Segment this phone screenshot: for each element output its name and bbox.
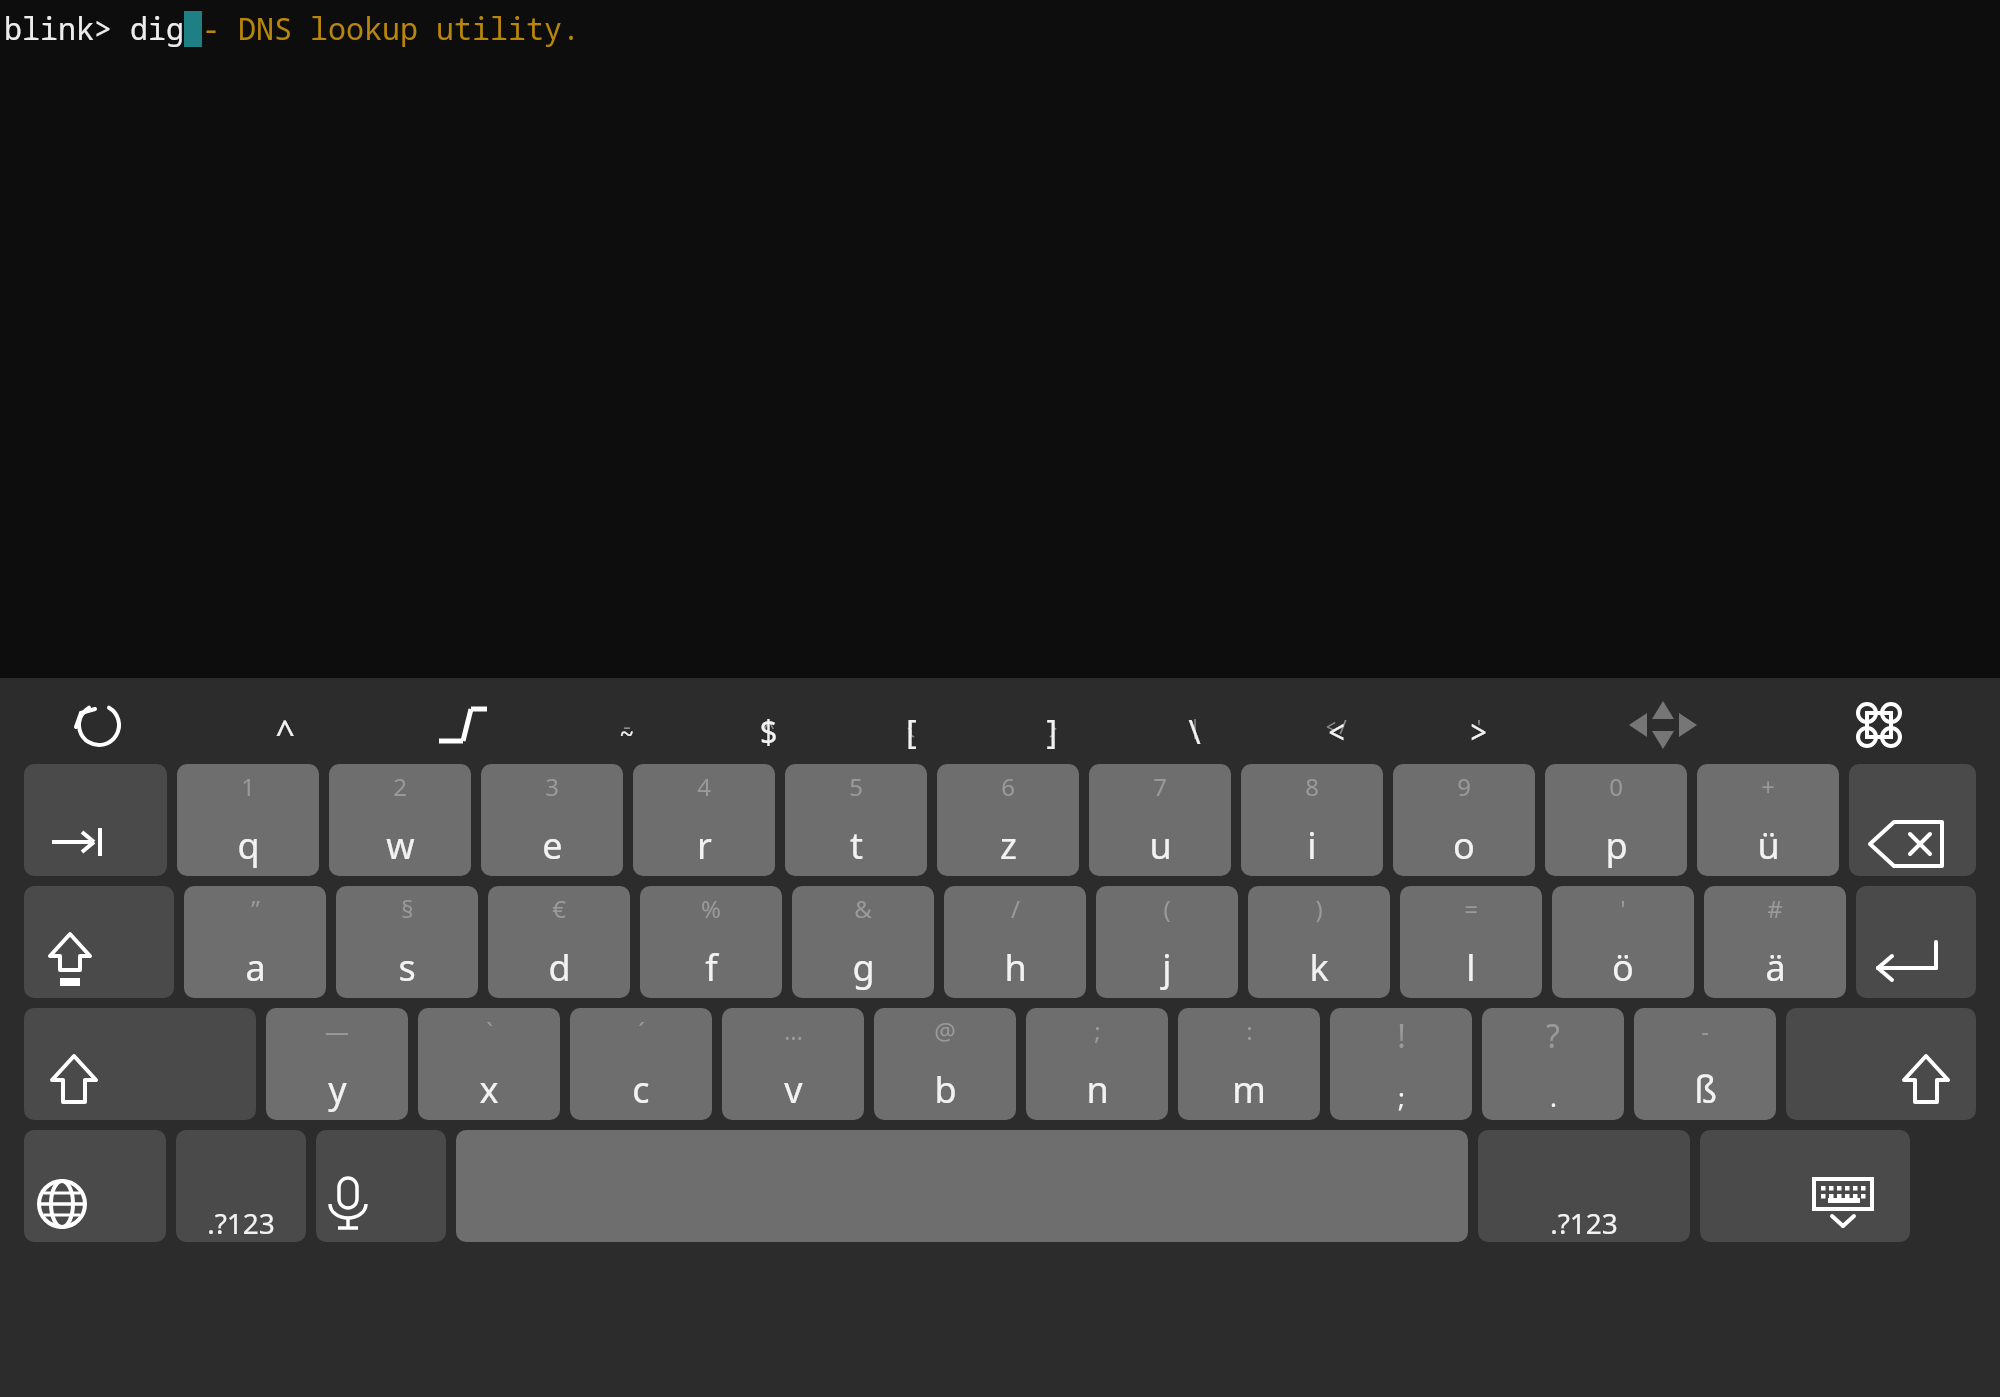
button[interactable]: ; (1026, 1008, 1168, 1120)
button[interactable]: Change keyboard (24, 1130, 166, 1242)
staticText: } (1047, 713, 1059, 740)
button[interactable]: ) (1248, 886, 1390, 998)
staticText: d (548, 943, 571, 992)
button[interactable]: .?123 (1478, 1130, 1690, 1242)
staticText: l (1466, 943, 1476, 992)
button[interactable]: { (876, 678, 946, 764)
staticText: ; (1094, 1014, 1101, 1047)
staticText: 1 (241, 770, 255, 803)
staticText: = (1464, 892, 1478, 925)
staticText: q (237, 821, 260, 870)
staticText: ´ (638, 1014, 645, 1047)
button[interactable]: … (722, 1008, 864, 1120)
button[interactable]: - (1634, 1008, 1776, 1120)
staticText: ` (486, 1014, 493, 1047)
staticText: ; (1398, 1079, 1405, 1114)
staticText: | (1189, 713, 1201, 740)
staticText: 5 (849, 770, 863, 803)
button[interactable]: : (1178, 1008, 1320, 1120)
button[interactable]: Shift (24, 1008, 256, 1120)
button[interactable]: 5 (785, 764, 927, 876)
button[interactable]: | (1160, 678, 1230, 764)
button[interactable]: + (1697, 764, 1839, 876)
button[interactable]: ( (1096, 886, 1238, 998)
staticText: n (1086, 1065, 1109, 1114)
button[interactable]: Backspace (1849, 764, 1976, 876)
button[interactable]: 7 (1089, 764, 1231, 876)
button[interactable]: — (266, 1008, 408, 1120)
staticText: - DNS lookup utility. (202, 8, 580, 49)
button[interactable]: 9 (1393, 764, 1535, 876)
button[interactable]: / (944, 886, 1086, 998)
staticText: 0 (1609, 770, 1623, 803)
button[interactable]: Dictate (316, 1130, 446, 1242)
button[interactable]: § (336, 886, 478, 998)
button[interactable]: Tab (426, 678, 496, 764)
staticText: § (401, 892, 414, 925)
button[interactable]: Hide keyboard (1700, 1130, 1910, 1242)
staticText: 9 (1457, 770, 1471, 803)
button[interactable]: Return (1856, 886, 1976, 998)
button[interactable]: ^ (250, 678, 320, 764)
button[interactable]: Caps lock (24, 886, 174, 998)
staticText: € (552, 892, 566, 925)
button[interactable]: 2 (329, 764, 471, 876)
button[interactable]: Arrow keys (1588, 678, 1738, 764)
button[interactable]: Command (1844, 678, 1914, 764)
staticText: o (1453, 821, 1475, 870)
button[interactable]: @ (874, 1008, 1016, 1120)
button[interactable]: % (640, 886, 782, 998)
button[interactable]: Shift (1786, 1008, 1976, 1120)
staticText: i (1307, 821, 1317, 870)
staticText: h (1004, 943, 1027, 992)
button[interactable]: 4 (633, 764, 775, 876)
button[interactable]: - (592, 678, 662, 764)
button[interactable]: 3 (481, 764, 623, 876)
button[interactable]: ' (1444, 678, 1514, 764)
button[interactable]: History (60, 678, 138, 764)
button[interactable]: 8 (1241, 764, 1383, 876)
staticText: > (1469, 710, 1489, 754)
button[interactable]: ? (1482, 1008, 1624, 1120)
staticText: y (328, 1065, 347, 1114)
staticText: \ (1185, 710, 1205, 754)
button[interactable]: } (1018, 678, 1088, 764)
staticText: .?123 (207, 1204, 275, 1242)
button[interactable]: # (1704, 886, 1846, 998)
button[interactable]: Tab (24, 764, 167, 876)
staticText: # (1767, 892, 1783, 925)
button[interactable]: 1 (177, 764, 319, 876)
button[interactable]: ' (1552, 886, 1694, 998)
staticText: . (1550, 1079, 1557, 1114)
staticText: k (1309, 943, 1329, 992)
button[interactable]: & (792, 886, 934, 998)
staticText: ' (1473, 713, 1485, 740)
staticText: r (697, 821, 712, 870)
staticText: .?123 (1550, 1204, 1618, 1242)
staticText: a (245, 943, 266, 992)
staticText: ! (1397, 1014, 1406, 1058)
staticText: ~ (619, 715, 635, 750)
button[interactable]: 0 (1545, 764, 1687, 876)
button[interactable]: ” (184, 886, 326, 998)
staticText: [ (901, 710, 921, 754)
staticText: b (934, 1065, 957, 1114)
button[interactable]: = (1400, 886, 1542, 998)
button[interactable]: ! (1330, 1008, 1472, 1120)
button[interactable]: ´ (570, 1008, 712, 1120)
button[interactable]: ` (418, 1008, 560, 1120)
button[interactable]: </ (1302, 678, 1372, 764)
staticText: u (1149, 821, 1172, 870)
staticText: ü (1757, 821, 1780, 870)
button[interactable]: ^ (734, 678, 804, 764)
staticText: < (1327, 710, 1347, 754)
staticText: ) (1315, 892, 1323, 925)
staticText: g (852, 943, 875, 992)
staticText: ” (251, 892, 260, 925)
staticText: j (1162, 943, 1172, 992)
staticText: ] (1043, 710, 1063, 754)
button[interactable]: .?123 (176, 1130, 306, 1242)
button[interactable]: 6 (937, 764, 1079, 876)
button[interactable]: € (488, 886, 630, 998)
